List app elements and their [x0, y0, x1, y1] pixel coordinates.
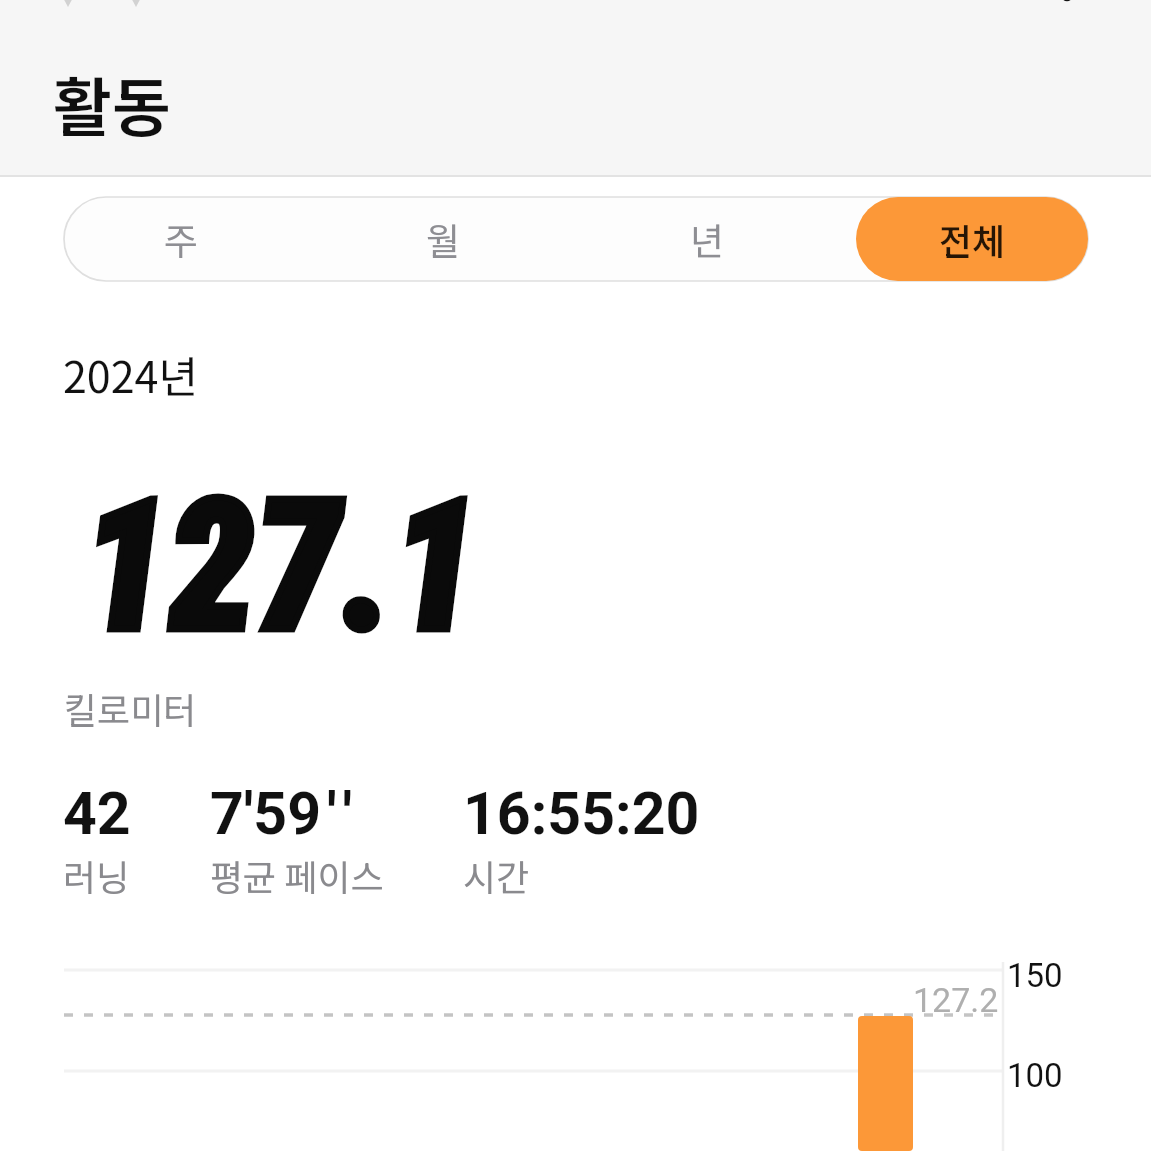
staticText: 150 [1007, 956, 1063, 995]
staticText: 년 [690, 212, 725, 266]
button[interactable]: 년 [607, 197, 807, 281]
button[interactable]: 주 [81, 197, 281, 281]
staticText: 시간 [463, 849, 530, 901]
staticText: 활동 [53, 57, 171, 150]
staticText: 킬로미터 [64, 682, 197, 734]
staticText: 2024년 [63, 343, 199, 405]
button[interactable]: 2024, 127.2 킬로미터 [858, 1016, 913, 1151]
staticText: 전체 [939, 213, 1006, 265]
staticText: 월 [426, 212, 461, 266]
staticText: 127.2 [913, 980, 999, 1020]
staticText: 러닝 [63, 849, 130, 901]
staticText: 7'59 ' ' [210, 779, 353, 848]
button[interactable]: 월 [343, 197, 543, 281]
button[interactable]: 전체 [856, 197, 1088, 281]
staticText: 42 [63, 779, 131, 848]
staticText: 100 [1007, 1056, 1063, 1095]
staticText: 16:55:20 [463, 779, 700, 848]
staticText: 주 [164, 212, 199, 266]
staticText: 평균 페이스 [210, 849, 384, 901]
